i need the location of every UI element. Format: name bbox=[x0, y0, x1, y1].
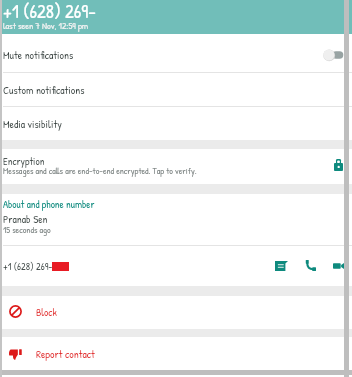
button[interactable] bbox=[0, 194, 352, 245]
button[interactable]: Report contact bbox=[9, 348, 22, 360]
button[interactable]: Message bbox=[268, 254, 295, 278]
staticText: 15 seconds ago bbox=[3, 224, 51, 236]
staticText: last seen 7 Nov, 12:59 pm bbox=[3, 19, 89, 32]
button[interactable]: Video call bbox=[326, 255, 351, 277]
button[interactable] bbox=[0, 246, 352, 286]
staticText: Report contact bbox=[36, 347, 95, 362]
button[interactable] bbox=[0, 34, 352, 72]
button[interactable]: Call bbox=[298, 253, 323, 278]
staticText: Messages and calls are end-to-end encryp… bbox=[3, 165, 197, 177]
button[interactable]: Encryption info bbox=[331, 157, 346, 172]
button[interactable]: Mute notifications toggle bbox=[320, 46, 346, 64]
staticText: Encryption bbox=[3, 154, 45, 168]
staticText: Mute notifications bbox=[3, 48, 74, 63]
button[interactable] bbox=[0, 73, 352, 106]
staticText: About and phone number bbox=[3, 197, 95, 211]
staticText: +1 (628) 269- bbox=[3, 260, 53, 274]
button[interactable] bbox=[0, 149, 352, 184]
staticText: +1 (628) 269- bbox=[3, 0, 96, 23]
staticText: Custom notifications bbox=[3, 83, 85, 98]
button[interactable] bbox=[0, 337, 352, 370]
button[interactable] bbox=[0, 296, 352, 329]
staticText: Media visibility bbox=[3, 117, 62, 132]
button[interactable]: Block bbox=[9, 305, 22, 318]
staticText: Pranab Sen bbox=[3, 212, 48, 227]
staticText: Block bbox=[36, 305, 57, 319]
button[interactable] bbox=[0, 107, 352, 140]
button[interactable]: +1 (628) 269- bbox=[0, 0, 352, 34]
